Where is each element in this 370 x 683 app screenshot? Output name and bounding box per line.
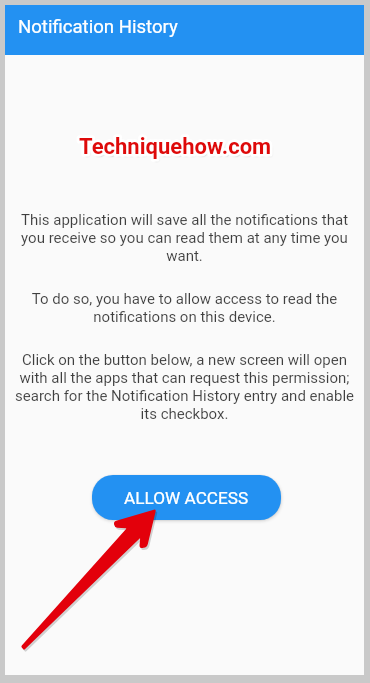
button[interactable]: ALLOW ACCESS — [92, 475, 281, 520]
button[interactable]: Notification History — [5, 5, 364, 55]
staticText: Notification History — [18, 16, 178, 38]
staticText: ALLOW ACCESS — [124, 488, 249, 508]
staticText: This application will save all the notif… — [13, 211, 356, 265]
staticText: Techniquehow.com — [79, 134, 272, 160]
staticText: To do so, you have to allow access to re… — [13, 290, 356, 326]
staticText: Click on the button below, a new screen … — [13, 351, 356, 423]
staticText: Techniquehow.com — [79, 134, 272, 160]
